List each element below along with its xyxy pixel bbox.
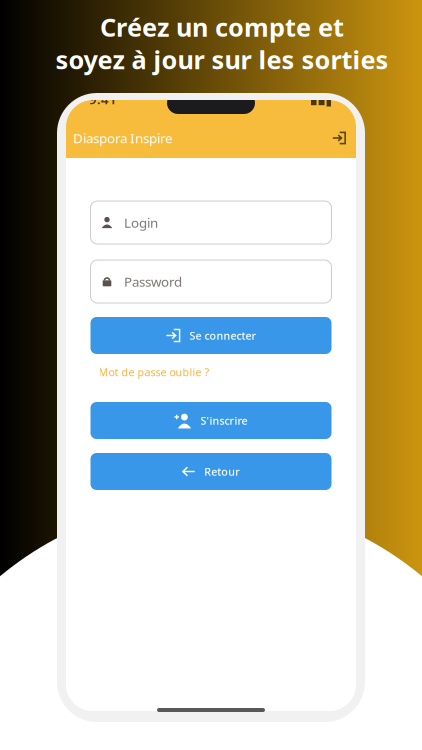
staticText: ▪▪▮ (309, 94, 332, 108)
button[interactable]: Login (90, 201, 331, 244)
staticText: soyez à jour sur les sorties (55, 43, 388, 76)
button[interactable]: Retour (90, 453, 331, 490)
button[interactable]: Se connecter (90, 317, 331, 354)
button[interactable]: Mot de passe oublie ? (90, 354, 331, 388)
staticText: Diaspora Inspire (73, 129, 173, 147)
staticText: Password (124, 273, 182, 290)
staticText: Mot de passe oublie ? (98, 365, 209, 379)
staticText: S'inscrire (200, 413, 247, 428)
button[interactable]: S'inscrire (90, 402, 331, 439)
staticText: 9:41 (89, 90, 117, 108)
button[interactable]: Password (90, 260, 331, 303)
staticText: Créez un compte et (100, 10, 344, 44)
button[interactable]: Sign in (327, 126, 351, 150)
staticText: Se connecter (189, 328, 256, 343)
staticText: Retour (204, 464, 240, 479)
staticText: Login (124, 214, 158, 231)
